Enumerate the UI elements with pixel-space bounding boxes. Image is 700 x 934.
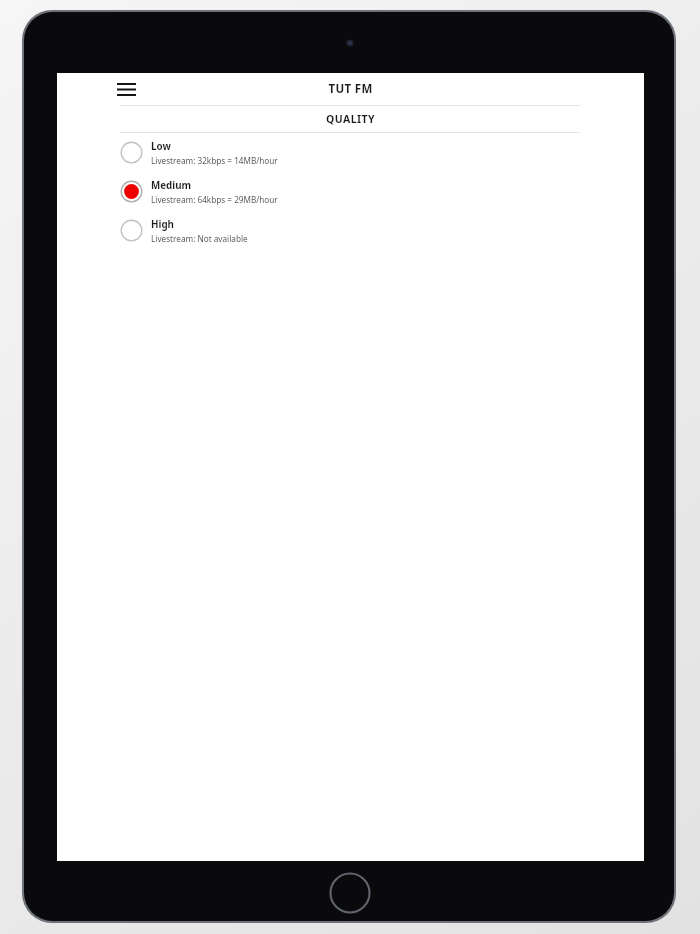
staticText: Medium	[151, 179, 192, 192]
staticText: Low	[151, 140, 171, 153]
staticText: Livestream: 64kbps = 29MB/hour	[151, 194, 278, 205]
staticText: High	[151, 218, 174, 231]
button[interactable]: High	[57, 211, 644, 250]
button[interactable]: Open navigation menu	[111, 74, 141, 104]
staticText: QUALITY	[326, 112, 376, 126]
staticText: Livestream: Not available	[151, 233, 248, 244]
staticText: Livestream: 32kbps = 14MB/hour	[151, 155, 278, 166]
button[interactable]: Low	[57, 133, 644, 172]
staticText: TUT FM	[328, 81, 373, 97]
button[interactable]: Medium	[57, 172, 644, 211]
